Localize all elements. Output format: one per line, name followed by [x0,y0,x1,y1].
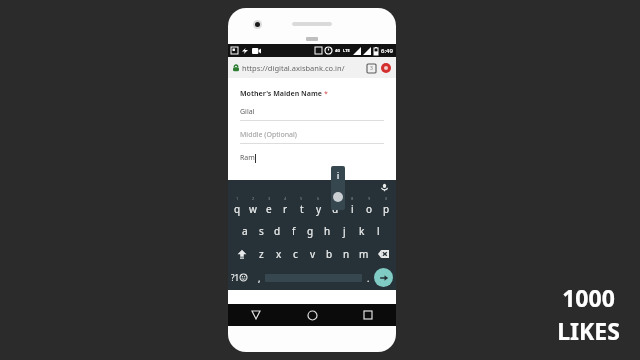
staticText: Middle (Optional) [240,130,297,140]
button[interactable]: Voice input [380,183,389,192]
staticText: t [300,202,304,216]
staticText: 0 [385,196,388,201]
button[interactable]: 1 [229,194,245,219]
button[interactable]: Recents [340,304,396,326]
staticText: e [266,202,272,216]
button[interactable]: 0 [378,194,395,219]
staticText: o [366,202,373,216]
button[interactable]: Enter [374,268,393,287]
button[interactable]: m [355,242,372,265]
staticText: r [283,202,288,216]
staticText: ?1 [231,272,240,283]
other: Secure connection [233,64,239,72]
staticText: a [242,224,248,238]
staticText: g [307,224,314,238]
staticText: 6:49 [381,47,393,55]
button[interactable]: , [253,265,265,290]
staticText: i [337,170,340,181]
staticText: 8 [351,196,354,201]
button[interactable]: ?1 [231,265,253,290]
button[interactable]: Gilal [240,107,384,121]
button[interactable]: 6 [310,194,327,219]
staticText: d [274,224,281,238]
staticText: z [259,247,264,261]
button[interactable]: 4 [277,194,293,219]
button[interactable]: Shift [230,242,253,265]
button[interactable]: n [338,242,355,265]
button[interactable]: k [353,219,370,242]
button[interactable]: z [253,242,270,265]
staticText: 3 [268,196,271,201]
button[interactable]: l [370,219,387,242]
staticText: LIKES [557,315,620,346]
staticText: w [249,202,257,216]
staticText: m [359,247,369,261]
staticText: LTE [343,48,350,53]
button[interactable]: Middle (Optional) [240,130,384,144]
button[interactable]: a [237,219,253,242]
staticText: l [377,224,380,238]
button[interactable]: Home [284,304,340,326]
staticText: n [343,247,350,261]
staticText: 9 [368,196,371,201]
button[interactable]: Backspace [372,242,394,265]
staticText: . [367,272,370,284]
button[interactable]: Ram [240,153,384,163]
staticText: q [234,202,241,216]
staticText: x [276,247,282,261]
button[interactable]: https://digital.axisbank.co.in/ [242,63,364,73]
staticText: v [310,247,316,261]
staticText: u [332,202,339,216]
staticText: https://digital.axisbank.co.in/ [242,63,345,73]
staticText: 7 [334,196,337,201]
staticText: * [324,89,328,99]
button[interactable]: . [362,265,374,290]
staticText: y [316,202,322,216]
staticText: 5 [300,196,303,201]
staticText: 1000 [562,282,615,313]
button[interactable]: 2 [245,194,261,219]
button[interactable]: 7 [327,194,344,219]
button[interactable]: 3 [261,194,277,219]
button[interactable]: v [304,242,321,265]
staticText: Ram [240,153,255,163]
staticText: k [359,224,365,238]
button[interactable]: b [321,242,338,265]
button[interactable]: d [269,219,285,242]
button[interactable]: g [302,219,319,242]
button[interactable]: Stop loading [381,63,391,73]
staticText: 2 [252,196,255,201]
button[interactable]: c [287,242,304,265]
staticText: , [258,272,261,284]
button[interactable]: 8 [344,194,361,219]
button[interactable]: h [319,219,336,242]
button[interactable]: Back [228,304,284,326]
button[interactable]: x [270,242,287,265]
button[interactable]: j [336,219,353,242]
staticText: s [259,224,264,238]
staticText: 4 [284,196,287,201]
staticText: 1 [236,196,239,201]
staticText: j [343,224,346,238]
staticText: h [324,224,331,238]
staticText: 4G [335,48,341,53]
staticText: 6 [317,196,320,201]
staticText: b [326,247,333,261]
button[interactable]: Tabs [367,64,376,73]
staticText: 3 [370,65,373,72]
button[interactable]: f [285,219,302,242]
staticText: Mother's Maiden Name [240,89,322,99]
staticText: p [383,202,390,216]
button[interactable]: 9 [361,194,378,219]
staticText: i [351,202,354,216]
button[interactable]: s [253,219,269,242]
staticText: f [292,224,296,238]
staticText: c [293,247,298,261]
button[interactable]: 5 [293,194,310,219]
staticText: Gilal [240,107,255,117]
